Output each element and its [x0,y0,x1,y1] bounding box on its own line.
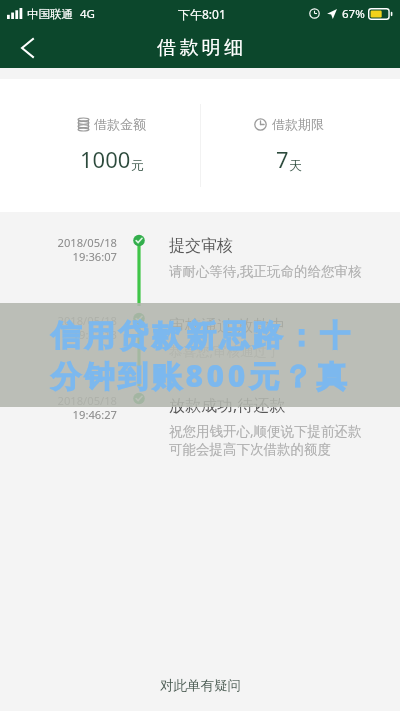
staticText: 2018/05/18 19:36:07 [57,235,117,264]
button[interactable]: Back [7,28,47,68]
staticText: 放款成功,待还款 [169,394,286,416]
staticText: 2018/05/18 19:42:13 [57,313,117,342]
button[interactable]: 对此单有疑问 [146,671,255,700]
staticText: 提交审核 [169,236,233,256]
staticText: 审核通过,放款中 [169,314,286,336]
staticText: 祝您用钱开心,顺便说下提前还款 可能会提高下次借款的额度 [169,422,362,458]
staticText: 对此单有疑问 [160,677,241,694]
staticText: 2018/05/18 19:46:27 [57,393,117,422]
staticText: 天 [289,157,302,173]
staticText: 7 [276,144,289,174]
staticText: 中国联通 [27,7,73,21]
staticText: 1000 [80,144,131,174]
staticText: 下午8:01 [178,6,226,22]
staticText: 借款金额 [94,116,146,132]
staticText: 信用贷款新思路：十 分钟到账800元？真 [51,317,354,396]
staticText: 元 [131,157,144,173]
staticText: 借款期限 [272,116,324,132]
staticText: 67% [342,6,365,22]
staticText: 请耐心等待,我正玩命的给您审核 [169,262,362,280]
staticText: 借款明细 [157,36,247,60]
staticText: 恭喜您,审核通过了 [169,342,281,360]
staticText: 4G [80,6,95,22]
